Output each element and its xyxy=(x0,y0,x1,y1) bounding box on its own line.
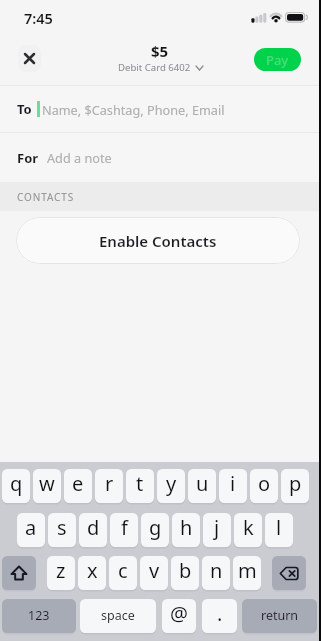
staticText: n xyxy=(210,557,223,584)
staticText: x xyxy=(87,557,98,584)
staticText: Name, $Cashtag, Phone, Email xyxy=(42,101,225,118)
staticText: u xyxy=(196,470,209,497)
staticText: y xyxy=(166,470,177,497)
staticText: t xyxy=(136,470,144,497)
staticText: $5 xyxy=(151,41,169,61)
button[interactable]: . xyxy=(202,599,237,633)
button[interactable]: k xyxy=(234,513,262,547)
staticText: w xyxy=(39,470,55,497)
staticText: p xyxy=(289,470,302,497)
staticText: Debit Card 6402 xyxy=(118,61,191,74)
button[interactable]: n xyxy=(202,556,230,590)
button[interactable]: space xyxy=(80,599,156,633)
staticText: k xyxy=(243,514,254,541)
button[interactable]: s xyxy=(48,513,76,547)
staticText: Add a note xyxy=(47,149,112,166)
staticText: a xyxy=(25,514,37,541)
staticText: c xyxy=(118,557,128,584)
button[interactable]: @ xyxy=(162,599,196,633)
button[interactable]: Close xyxy=(18,45,41,72)
button[interactable]: v xyxy=(140,556,168,590)
staticText: q xyxy=(10,470,23,497)
button[interactable]: w xyxy=(33,469,61,503)
staticText: e xyxy=(72,470,84,497)
staticText: d xyxy=(87,514,100,541)
button[interactable]: p xyxy=(281,469,309,503)
staticText: @ xyxy=(170,600,188,627)
staticText: m xyxy=(238,557,257,584)
button[interactable]: e xyxy=(64,469,92,503)
staticText: Enable Contacts xyxy=(99,231,217,251)
staticText: r xyxy=(105,470,114,497)
button[interactable]: g xyxy=(141,513,169,547)
button[interactable]: x xyxy=(78,556,106,590)
button[interactable]: Debit Card 6402 xyxy=(118,61,203,74)
staticText: CONTACTS xyxy=(17,190,75,204)
staticText: . xyxy=(217,600,223,627)
staticText: z xyxy=(56,557,66,584)
button[interactable]: c xyxy=(109,556,137,590)
button[interactable]: z xyxy=(47,556,75,590)
button[interactable]: r xyxy=(95,469,123,503)
button[interactable]: Shift xyxy=(2,556,36,590)
staticText: b xyxy=(179,557,192,584)
button[interactable]: return xyxy=(242,599,317,633)
button[interactable]: t xyxy=(126,469,154,503)
staticText: l xyxy=(276,514,282,541)
staticText: To xyxy=(17,100,32,118)
staticText: return xyxy=(261,607,299,624)
staticText: For xyxy=(17,149,39,167)
button[interactable]: f xyxy=(110,513,138,547)
button[interactable]: o xyxy=(250,469,278,503)
button[interactable]: Backspace xyxy=(272,556,306,590)
button[interactable]: m xyxy=(233,556,261,590)
button[interactable]: l xyxy=(265,513,293,547)
staticText: i xyxy=(230,470,236,497)
staticText: j xyxy=(214,514,220,541)
staticText: g xyxy=(149,514,162,541)
button[interactable]: Pay xyxy=(254,48,301,71)
staticText: space xyxy=(101,607,135,624)
button[interactable]: j xyxy=(203,513,231,547)
staticText: f xyxy=(121,514,128,541)
button[interactable]: d xyxy=(79,513,107,547)
button[interactable]: To xyxy=(0,86,321,132)
button[interactable]: Enable Contacts xyxy=(16,217,300,264)
staticText: s xyxy=(57,514,67,541)
button[interactable]: b xyxy=(171,556,199,590)
button[interactable]: a xyxy=(17,513,45,547)
button[interactable]: u xyxy=(188,469,216,503)
button[interactable]: q xyxy=(2,469,30,503)
staticText: h xyxy=(180,514,193,541)
button[interactable]: y xyxy=(157,469,185,503)
staticText: 7:45 xyxy=(24,8,53,28)
button[interactable]: i xyxy=(219,469,247,503)
staticText: 123 xyxy=(28,607,50,624)
staticText: Pay xyxy=(266,51,289,69)
button[interactable]: For xyxy=(0,133,321,182)
button[interactable]: h xyxy=(172,513,200,547)
staticText: v xyxy=(149,557,160,584)
button[interactable]: 123 xyxy=(2,599,76,633)
staticText: o xyxy=(258,470,271,497)
